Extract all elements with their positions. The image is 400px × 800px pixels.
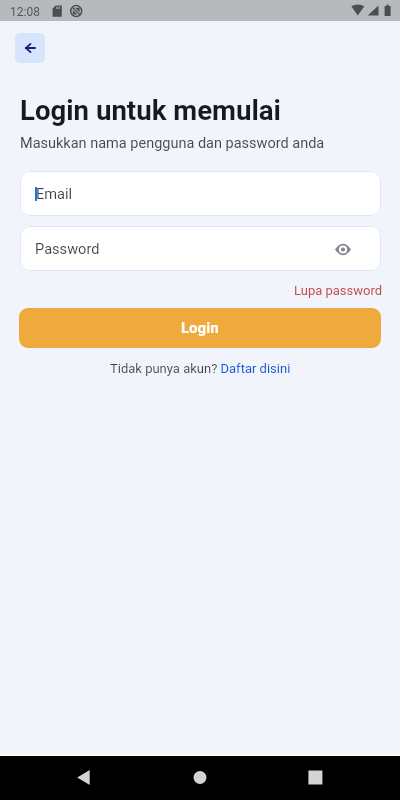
staticText: Masukkan nama pengguna dan password anda	[20, 135, 325, 152]
button[interactable]: Tidak punya akun? Daftar disini	[110, 361, 291, 376]
button[interactable]: Back	[15, 33, 45, 63]
button[interactable]: Password	[20, 226, 381, 271]
staticText: Login	[181, 319, 219, 337]
button[interactable]: Login	[19, 308, 381, 348]
button[interactable]: Email	[20, 171, 381, 216]
button[interactable]: Lupa password	[294, 283, 383, 298]
staticText: Email	[36, 185, 73, 202]
staticText: 12:08	[10, 5, 40, 19]
staticText: Login untuk memulai	[20, 94, 281, 126]
button[interactable]: Show password	[329, 235, 357, 263]
staticText: Password	[35, 240, 100, 257]
